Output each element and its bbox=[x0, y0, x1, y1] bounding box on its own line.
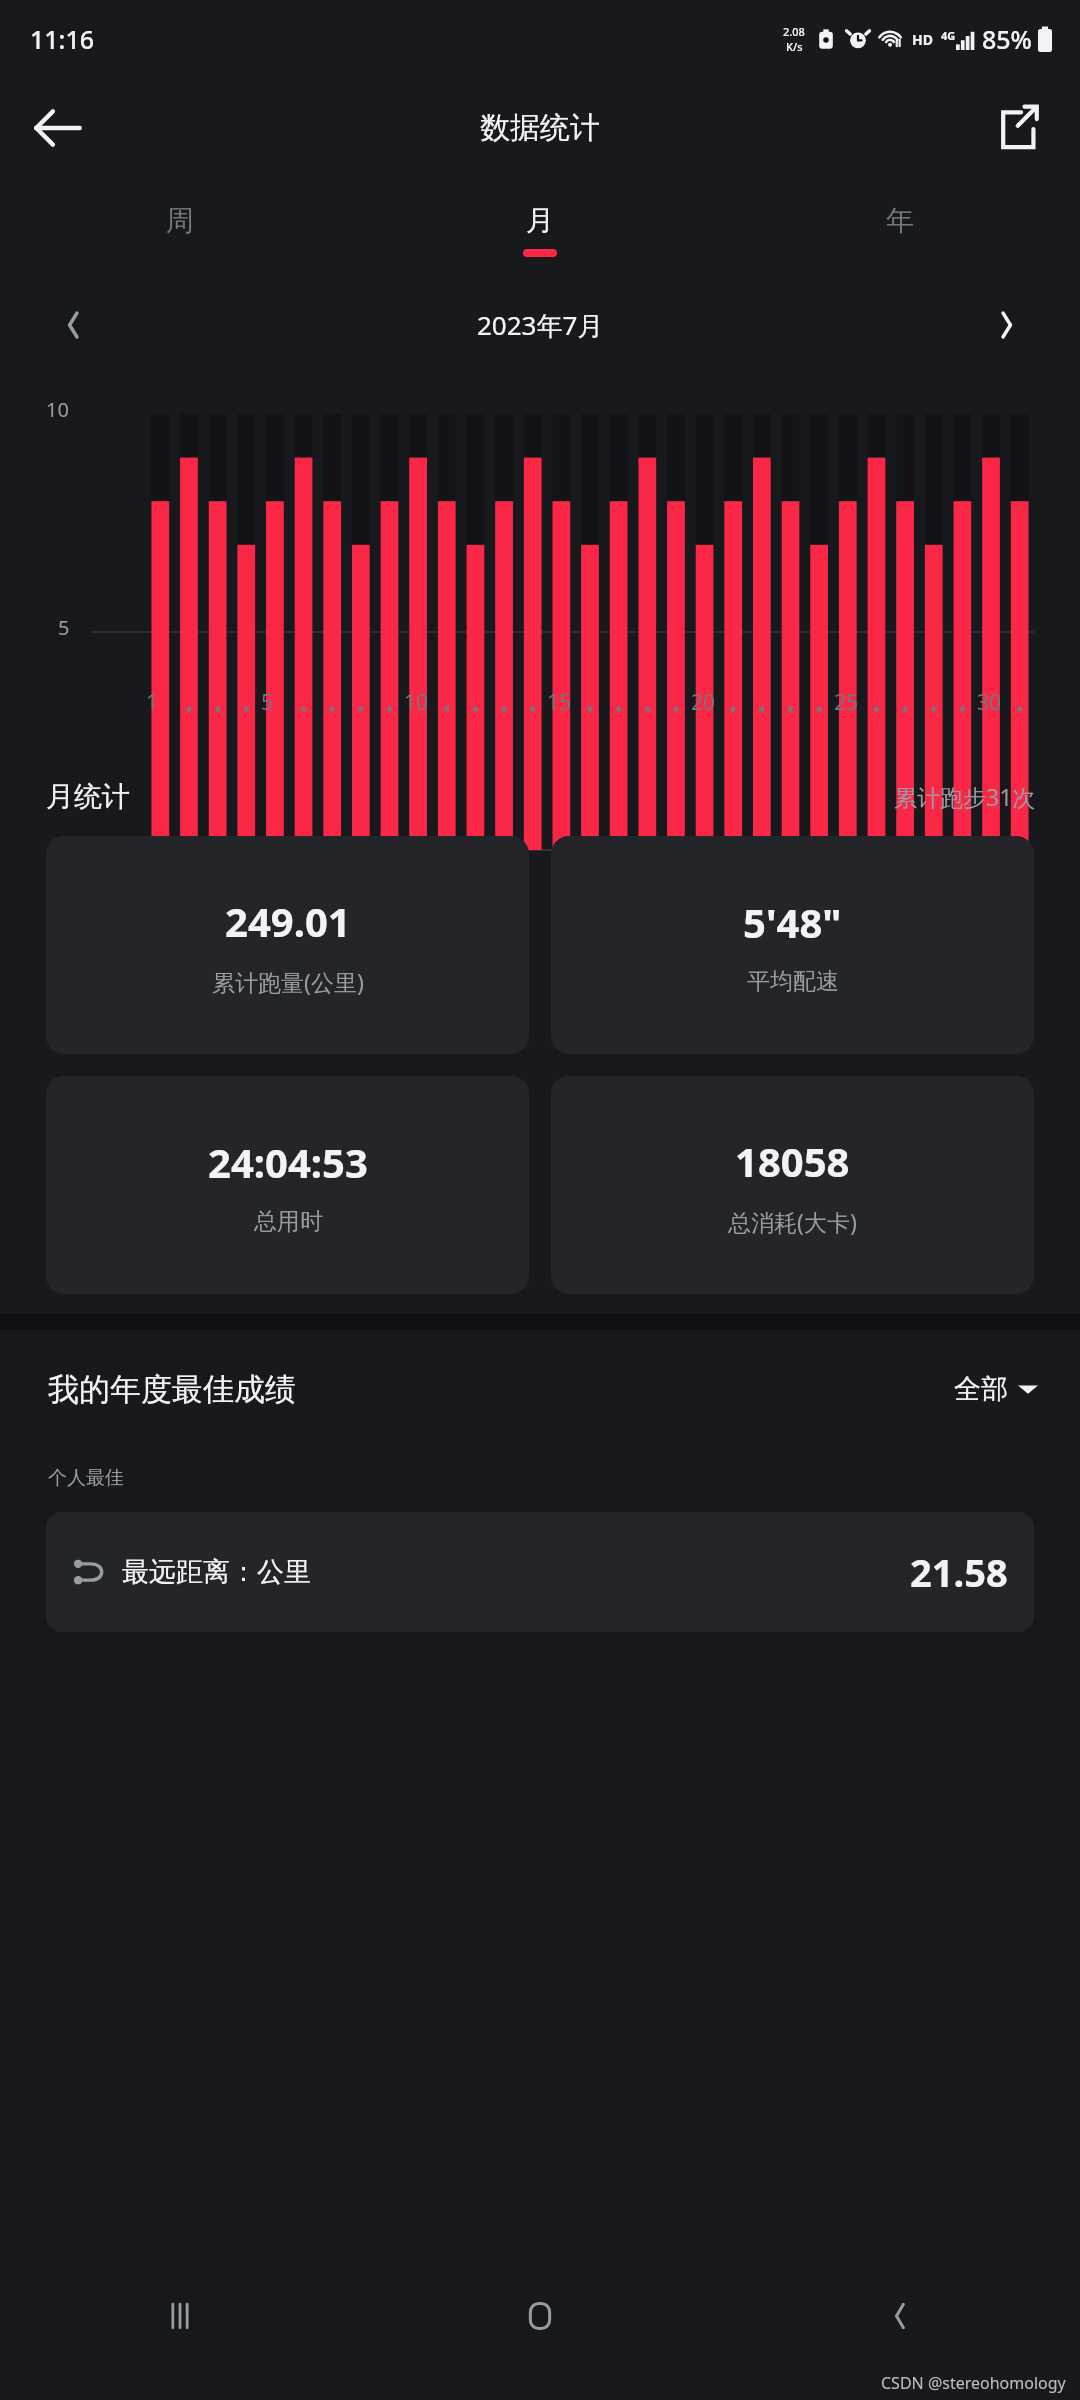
staticText: 10 bbox=[46, 396, 69, 423]
staticText: 25 bbox=[834, 688, 859, 717]
button[interactable]: 最远距离：公里 bbox=[46, 1512, 1034, 1632]
button[interactable]: 周 bbox=[0, 178, 360, 282]
staticText: 24:04:53 bbox=[208, 1135, 368, 1189]
staticText: 年 bbox=[886, 203, 914, 238]
staticText: 最远距离：公里 bbox=[122, 1555, 311, 1589]
staticText: 85% bbox=[982, 22, 1032, 56]
button[interactable]: Share bbox=[992, 100, 1048, 156]
staticText: CSDN @stereohomology bbox=[881, 2372, 1066, 2394]
button[interactable]: 5'48" bbox=[551, 836, 1034, 1054]
button[interactable]: Previous month bbox=[48, 300, 98, 350]
staticText: 249.01 bbox=[225, 894, 351, 948]
staticText: 总消耗(大卡) bbox=[728, 1206, 857, 1237]
button[interactable]: 249.01 bbox=[46, 836, 529, 1054]
button[interactable]: 18058 bbox=[551, 1076, 1034, 1294]
staticText: 5'48" bbox=[743, 895, 842, 949]
staticText: 5 bbox=[58, 614, 70, 641]
staticText: 平均配速 bbox=[747, 967, 839, 996]
staticText: 周 bbox=[166, 203, 194, 238]
staticText: 18058 bbox=[735, 1134, 850, 1188]
button[interactable]: Back bbox=[26, 96, 90, 160]
button[interactable]: 月 bbox=[360, 178, 720, 282]
staticText: 10 bbox=[404, 688, 429, 717]
staticText: 月 bbox=[526, 203, 554, 238]
staticText: 月统计 bbox=[46, 779, 130, 814]
staticText: 11:16 bbox=[30, 22, 95, 56]
button[interactable]: 全部 bbox=[954, 1372, 1038, 1406]
button[interactable]: 24:04:53 bbox=[46, 1076, 529, 1294]
staticText: 全部 bbox=[954, 1372, 1008, 1406]
staticText: 1 bbox=[146, 688, 159, 717]
staticText: 15 bbox=[547, 688, 572, 717]
staticText: 累计跑量(公里) bbox=[212, 966, 364, 997]
staticText: 20 bbox=[691, 688, 716, 717]
staticText: 5 bbox=[261, 688, 274, 717]
staticText: 个人最佳 bbox=[48, 1466, 124, 1490]
button[interactable]: Home bbox=[360, 2270, 720, 2362]
staticText: 累计跑步31次 bbox=[894, 781, 1036, 812]
button[interactable]: Back bbox=[720, 2270, 1080, 2362]
button[interactable]: 年 bbox=[720, 178, 1080, 282]
staticText: 2.08 bbox=[783, 24, 805, 39]
staticText: K/s bbox=[786, 39, 803, 54]
staticText: 我的年度最佳成绩 bbox=[48, 1370, 296, 1409]
staticText: 30 bbox=[977, 688, 1002, 717]
staticText: 21.58 bbox=[910, 1546, 1008, 1598]
staticText: HD bbox=[912, 30, 933, 49]
button[interactable]: Next month bbox=[982, 300, 1032, 350]
button[interactable]: Recents bbox=[0, 2270, 360, 2362]
staticText: 4G bbox=[941, 28, 956, 43]
staticText: 数据统计 bbox=[480, 109, 600, 147]
staticText: 总用时 bbox=[254, 1207, 323, 1236]
staticText: 2023年7月 bbox=[477, 307, 604, 343]
